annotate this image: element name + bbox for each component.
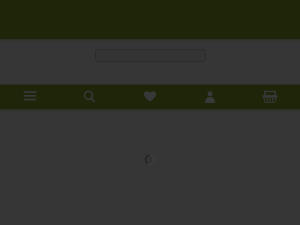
button[interactable]: Menu <box>0 83 60 112</box>
button[interactable]: Account <box>180 83 240 112</box>
button[interactable]: Search <box>60 83 120 112</box>
button[interactable]: Cart <box>240 83 300 112</box>
button[interactable]: Wishlist <box>120 83 180 112</box>
